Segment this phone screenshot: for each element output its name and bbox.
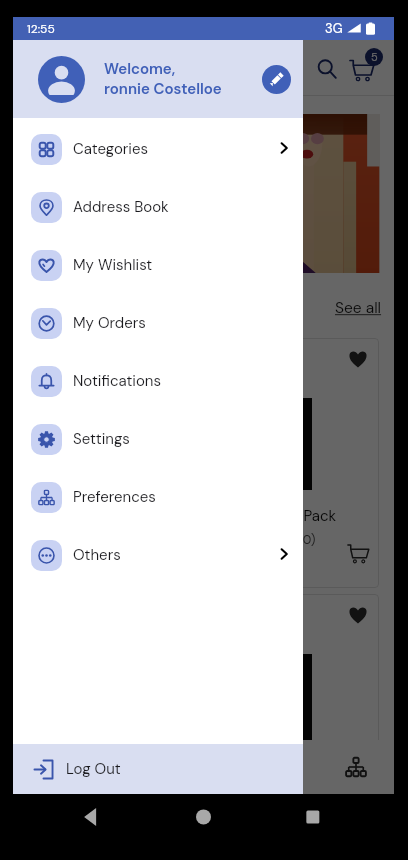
button[interactable]: Winter Pack — [28, 338, 197, 588]
staticText: ronnie Costelloe — [104, 79, 222, 99]
button[interactable]: Address Book — [13, 178, 303, 236]
staticText: Winter Pack — [253, 762, 337, 782]
staticText: 3G — [325, 20, 343, 37]
staticText: Log Out — [66, 759, 121, 779]
staticText: Notifications — [73, 371, 161, 391]
button[interactable]: Log Out — [13, 744, 303, 794]
button[interactable]: My Orders — [13, 294, 303, 352]
staticText: Address Book — [73, 197, 169, 217]
button[interactable]: Profile — [242, 740, 318, 794]
staticText: Categories — [73, 139, 149, 159]
button[interactable]: Notifications — [13, 352, 303, 410]
staticText: Preferences — [73, 487, 156, 507]
staticText: 5 — [371, 50, 378, 64]
button[interactable]: Winter Pack — [210, 338, 379, 588]
button[interactable]: Edit profile — [262, 65, 291, 94]
staticText: See all — [335, 298, 382, 318]
staticText: Shoppie — [69, 56, 146, 81]
button[interactable]: Winter Pack — [28, 594, 197, 794]
staticText: (4.0) — [289, 788, 316, 794]
staticText: Others — [73, 545, 121, 565]
button[interactable]: Search — [312, 54, 342, 84]
button[interactable]: Wishlist — [90, 740, 166, 794]
button[interactable]: Menu — [25, 51, 59, 85]
button[interactable]: Categories — [318, 740, 394, 794]
staticText: Winter Pack — [71, 762, 155, 782]
button[interactable]: Preferences — [13, 468, 303, 526]
button[interactable]: Categories — [13, 120, 303, 178]
staticText: Winter Pack — [253, 506, 337, 526]
button[interactable]: Welcome, — [13, 40, 303, 118]
staticText: Settings — [73, 429, 130, 449]
button[interactable]: Settings — [13, 410, 303, 468]
button[interactable]: Home — [13, 740, 90, 794]
button[interactable]: Others — [13, 526, 303, 584]
button[interactable]: Cart — [349, 48, 383, 82]
staticText: 12:55 — [27, 21, 55, 37]
button[interactable]: Cart — [166, 740, 242, 794]
button[interactable]: My Wishlist — [13, 236, 303, 294]
staticText: Welcome, — [104, 59, 176, 79]
staticText: My Wishlist — [73, 255, 153, 275]
staticText: (4.0) — [289, 532, 316, 548]
button[interactable]: Winter Pack — [210, 594, 379, 794]
staticText: My Orders — [73, 313, 146, 333]
